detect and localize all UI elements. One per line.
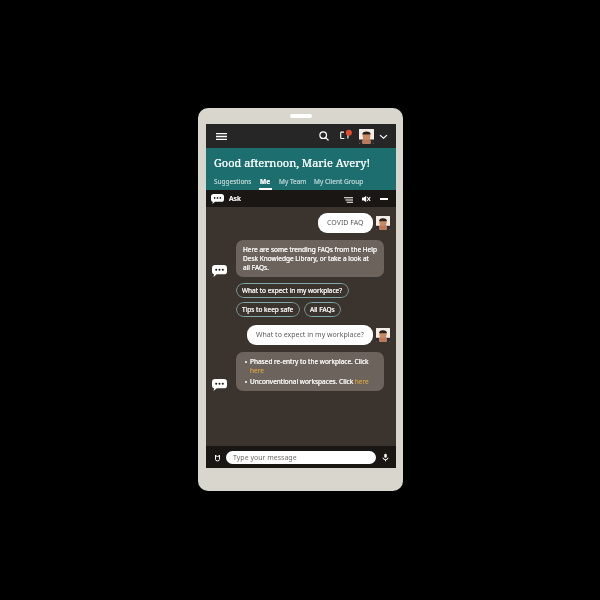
button[interactable]: Menu	[213, 128, 229, 144]
button[interactable]: Notifications	[338, 128, 354, 144]
button[interactable]: Phased re-entry to the workplace. Click …	[236, 352, 384, 391]
button[interactable]: Minimize	[377, 192, 391, 206]
button[interactable]: Mute	[359, 192, 373, 206]
button[interactable]: Voice input	[378, 450, 392, 464]
staticText: Phased re-entry to the workplace. Click …	[250, 357, 378, 375]
button[interactable]: Me	[259, 177, 272, 190]
button[interactable]: My Team	[279, 177, 307, 190]
button[interactable]: Suggestions	[214, 177, 252, 190]
button[interactable]: All FAQs	[304, 302, 341, 317]
button[interactable]: Account menu	[377, 130, 389, 142]
button[interactable]: What to expect in my workplace?	[236, 283, 349, 298]
button[interactable]: Tips to keep safe	[236, 302, 300, 317]
button[interactable]: Profile photo	[376, 328, 390, 342]
button[interactable]: My Client Group	[314, 177, 364, 190]
staticText: Good afternoon, Marie Avery!	[214, 155, 371, 170]
staticText: What to expect in my workplace?	[242, 286, 343, 295]
staticText: COVID FAQ	[327, 218, 364, 228]
staticText: My Client Group	[314, 177, 364, 186]
button[interactable]: What to expect in my workplace?	[247, 325, 373, 345]
staticText: Suggestions	[214, 177, 252, 186]
staticText: Here are some trending FAQs from the Hel…	[243, 245, 377, 272]
button[interactable]: Here are some trending FAQs from the Hel…	[236, 240, 384, 277]
button[interactable]: Profile photo	[376, 216, 390, 230]
staticText: Ask	[229, 194, 241, 204]
button[interactable]: Attach file	[210, 450, 224, 464]
staticText: What to expect in my workplace?	[256, 330, 364, 340]
staticText: My Team	[279, 177, 307, 186]
staticText: Me	[260, 177, 271, 186]
staticText: All FAQs	[310, 305, 335, 314]
button[interactable]: COVID FAQ	[318, 213, 373, 233]
button[interactable]: Search	[316, 128, 332, 144]
button[interactable]: Profile photo	[359, 129, 374, 144]
button[interactable]: Options	[341, 192, 355, 206]
button[interactable]: Type your message	[226, 451, 376, 464]
staticText: Unconventional workspaces. Click here	[250, 377, 369, 386]
staticText: Type your message	[233, 453, 297, 463]
staticText: Tips to keep safe	[242, 305, 294, 314]
